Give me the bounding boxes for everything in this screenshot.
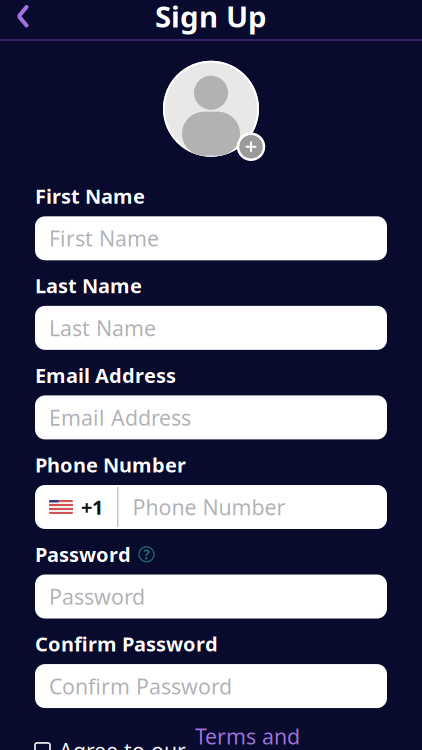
button[interactable]: Terms and Conditions xyxy=(195,722,303,750)
staticText: Password xyxy=(35,541,131,568)
button[interactable]: Change profile photo xyxy=(157,57,265,161)
staticText: Confirm Password xyxy=(49,672,232,700)
button[interactable]: Phone Number xyxy=(118,485,387,529)
staticText: Last Name xyxy=(35,272,142,299)
button[interactable]: Select country code xyxy=(35,485,117,529)
staticText: Email Address xyxy=(35,362,176,388)
staticText: +1 xyxy=(81,494,103,520)
staticText: Terms and Conditions xyxy=(195,722,303,750)
staticText: Last Name xyxy=(49,314,156,342)
button[interactable]: Agree to terms checkbox xyxy=(35,743,50,750)
staticText: Phone Number xyxy=(35,451,186,478)
staticText: Email Address xyxy=(49,403,191,432)
staticText: Agree to our xyxy=(59,736,186,750)
button[interactable]: Last Name xyxy=(35,306,387,350)
staticText: Phone Number xyxy=(132,493,285,521)
staticText: ? xyxy=(143,545,149,563)
button[interactable]: First Name xyxy=(35,216,387,260)
button[interactable]: Password requirements xyxy=(138,546,155,563)
button[interactable]: Email Address xyxy=(35,395,387,439)
staticText: Sign Up xyxy=(155,0,267,36)
staticText: Password xyxy=(49,582,145,611)
staticText: First Name xyxy=(49,224,159,252)
staticText: First Name xyxy=(35,183,145,209)
button[interactable]: Back xyxy=(0,0,46,38)
button[interactable]: Password xyxy=(35,574,387,618)
button[interactable]: Confirm Password xyxy=(35,664,387,708)
staticText: Confirm Password xyxy=(35,630,218,657)
